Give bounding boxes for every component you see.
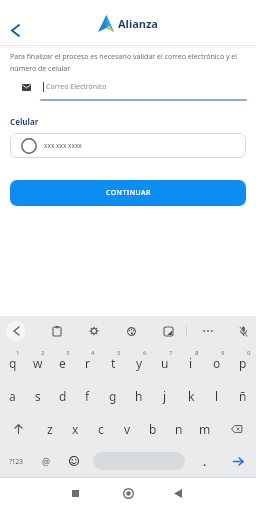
- staticText: h: [135, 388, 143, 404]
- button[interactable]: xxx xxx xxxx: [10, 133, 246, 158]
- button[interactable]: d: [50, 379, 75, 412]
- staticText: c: [98, 421, 104, 437]
- button[interactable]: b: [140, 412, 166, 445]
- button[interactable]: i: [178, 346, 204, 379]
- button[interactable]: x: [62, 412, 88, 445]
- button[interactable]: n: [166, 412, 192, 445]
- staticText: 2: [41, 349, 45, 357]
- button[interactable]: [233, 321, 253, 341]
- button[interactable]: l: [204, 379, 230, 412]
- button[interactable]: z: [37, 412, 62, 445]
- button[interactable]: ñ: [230, 379, 256, 412]
- staticText: r: [85, 355, 90, 371]
- button[interactable]: [6, 321, 26, 341]
- staticText: q: [9, 355, 17, 371]
- staticText: g: [109, 388, 117, 404]
- button[interactable]: s: [25, 379, 50, 412]
- staticText: 1: [16, 349, 20, 357]
- staticText: Para finalizar el proceso es necesario v…: [10, 52, 238, 73]
- staticText: .: [203, 454, 207, 469]
- button[interactable]: [220, 445, 256, 477]
- staticText: 6: [143, 349, 147, 357]
- button[interactable]: [158, 321, 178, 341]
- staticText: 5: [117, 349, 121, 357]
- staticText: b: [149, 421, 157, 437]
- button[interactable]: u: [152, 346, 178, 379]
- staticText: u: [161, 355, 169, 371]
- staticText: Correo Electrónico: [46, 82, 107, 92]
- staticText: z: [47, 421, 53, 437]
- staticText: f: [85, 388, 90, 404]
- button[interactable]: p: [230, 346, 256, 379]
- button[interactable]: t: [100, 346, 126, 379]
- staticText: m: [199, 421, 211, 437]
- button[interactable]: m: [192, 412, 218, 445]
- staticText: p: [239, 355, 247, 371]
- button[interactable]: [198, 321, 218, 341]
- staticText: 3: [66, 349, 70, 357]
- button[interactable]: [60, 445, 88, 477]
- staticText: ?123: [9, 457, 23, 466]
- button[interactable]: q: [0, 346, 25, 379]
- staticText: Celular: [10, 116, 39, 127]
- staticText: n: [175, 421, 183, 437]
- staticText: Alianza: [118, 16, 158, 31]
- button[interactable]: Correo Electrónico: [43, 81, 247, 93]
- button[interactable]: [4, 19, 26, 41]
- button[interactable]: e: [50, 346, 75, 379]
- button[interactable]: k: [178, 379, 204, 412]
- button[interactable]: [121, 321, 141, 341]
- staticText: i: [189, 355, 193, 371]
- staticText: ñ: [239, 388, 247, 404]
- button[interactable]: r: [75, 346, 100, 379]
- button[interactable]: ?123: [0, 445, 32, 477]
- staticText: 9: [221, 349, 225, 357]
- button[interactable]: w: [25, 346, 50, 379]
- button[interactable]: v: [114, 412, 140, 445]
- button[interactable]: y: [126, 346, 152, 379]
- staticText: a: [9, 388, 16, 404]
- staticText: y: [136, 355, 143, 371]
- staticText: 8: [195, 349, 199, 357]
- button[interactable]: f: [75, 379, 100, 412]
- staticText: k: [188, 388, 195, 404]
- button[interactable]: [167, 482, 189, 504]
- staticText: o: [213, 355, 221, 371]
- button[interactable]: CONTINUAR: [10, 180, 246, 206]
- staticText: 4: [91, 349, 95, 357]
- staticText: CONTINUAR: [106, 188, 151, 198]
- staticText: x: [72, 421, 79, 437]
- button[interactable]: a: [0, 379, 25, 412]
- staticText: v: [124, 421, 131, 437]
- staticText: l: [215, 388, 219, 404]
- button[interactable]: [88, 445, 190, 477]
- staticText: d: [59, 388, 67, 404]
- staticText: xxx xxx xxxx: [44, 141, 82, 150]
- button[interactable]: @: [32, 445, 60, 477]
- staticText: j: [163, 388, 167, 404]
- staticText: 0: [247, 349, 251, 357]
- staticText: @: [42, 455, 51, 467]
- button[interactable]: [0, 412, 37, 445]
- button[interactable]: .: [190, 445, 220, 477]
- button[interactable]: g: [100, 379, 126, 412]
- button[interactable]: [218, 412, 256, 445]
- button[interactable]: j: [152, 379, 178, 412]
- staticText: e: [59, 355, 66, 371]
- button[interactable]: [117, 482, 139, 504]
- button[interactable]: [84, 321, 104, 341]
- staticText: w: [33, 355, 43, 371]
- button[interactable]: o: [204, 346, 230, 379]
- button[interactable]: h: [126, 379, 152, 412]
- button[interactable]: [64, 482, 86, 504]
- staticText: s: [35, 388, 41, 404]
- button[interactable]: c: [88, 412, 114, 445]
- staticText: t: [111, 355, 116, 371]
- staticText: 7: [169, 349, 173, 357]
- button[interactable]: [47, 321, 67, 341]
